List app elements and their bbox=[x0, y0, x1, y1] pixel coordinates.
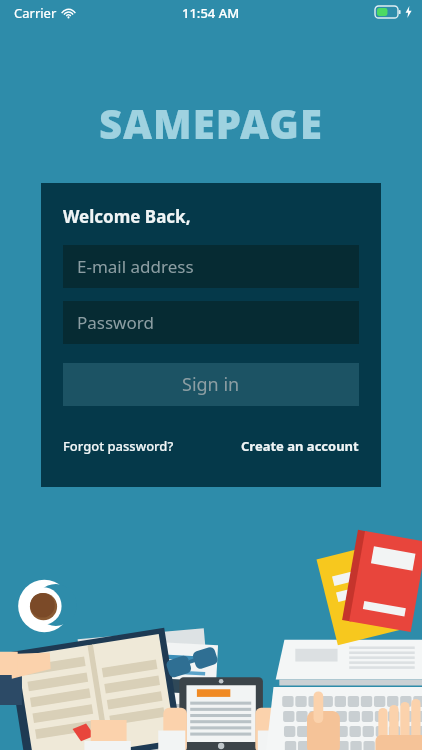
other: Charging bbox=[405, 6, 412, 18]
other: Battery bbox=[375, 6, 401, 18]
button[interactable]: Sign in bbox=[63, 363, 359, 406]
button[interactable]: E-mail address bbox=[63, 245, 359, 288]
staticText: Sign in bbox=[182, 372, 240, 397]
other: Wi-Fi signal bbox=[62, 7, 75, 20]
staticText: Create an account bbox=[241, 437, 359, 455]
button[interactable]: Forgot password? bbox=[63, 433, 174, 459]
staticText: Password bbox=[77, 311, 154, 334]
staticText: 11:54 AM bbox=[182, 4, 240, 22]
staticText: Welcome Back, bbox=[63, 205, 191, 228]
button[interactable]: Password bbox=[63, 301, 359, 344]
staticText: Carrier bbox=[14, 4, 57, 22]
staticText: E-mail address bbox=[77, 255, 194, 278]
staticText: Forgot password? bbox=[63, 437, 174, 455]
staticText: SAMEPAGE bbox=[99, 96, 323, 150]
button[interactable]: Create an account bbox=[241, 433, 359, 459]
